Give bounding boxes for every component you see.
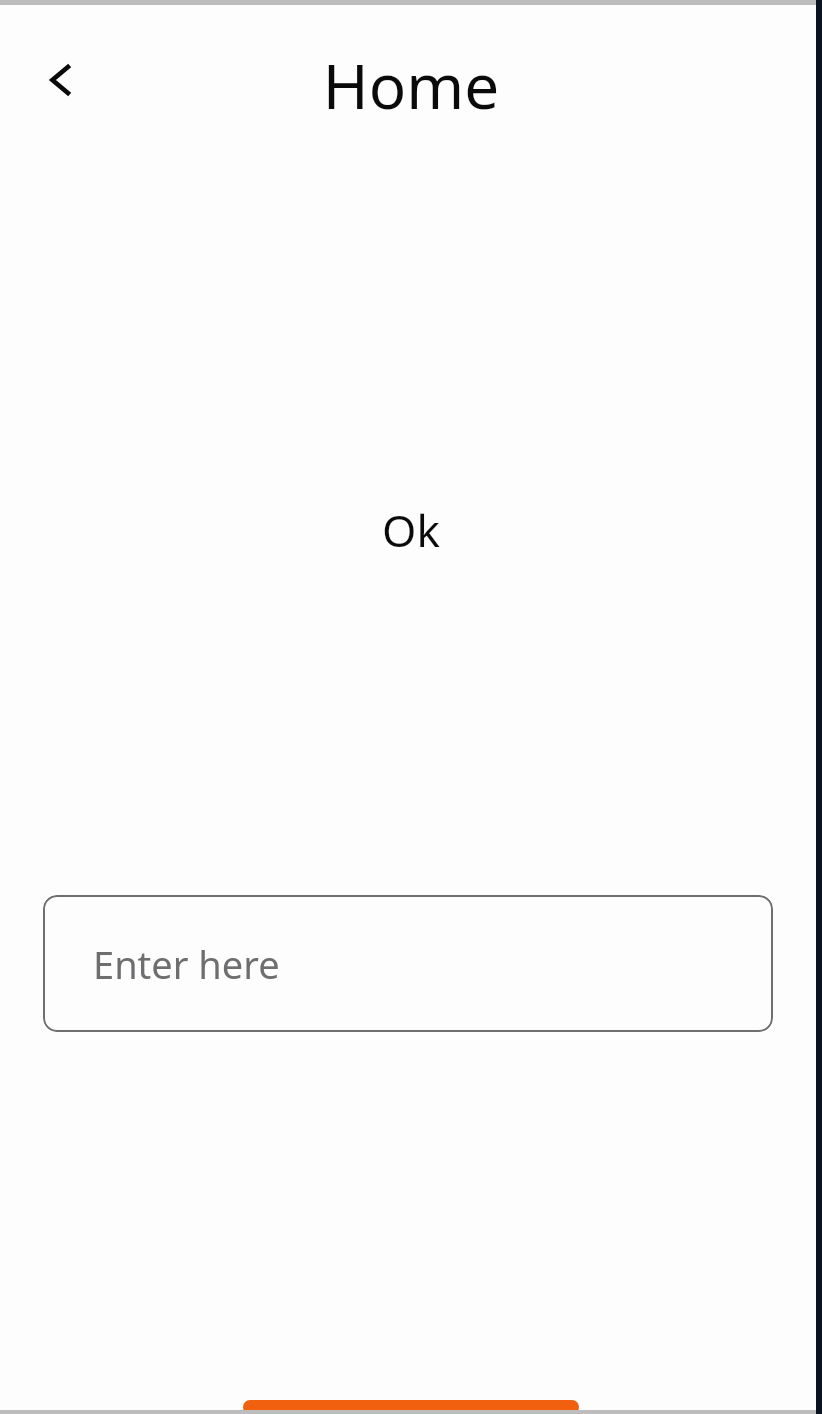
button[interactable]	[243, 1400, 579, 1414]
staticText: Enter here	[93, 938, 280, 990]
button[interactable]: Enter here	[43, 895, 773, 1032]
staticText: Ok	[382, 500, 440, 560]
staticText: Home	[0, 43, 822, 127]
button[interactable]: Back	[22, 40, 102, 120]
